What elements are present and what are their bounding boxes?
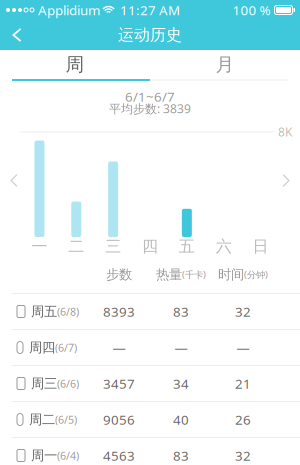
button[interactable]: 周五 <box>0 294 300 329</box>
staticText: 11:27 AM <box>120 1 180 19</box>
staticText: — <box>236 339 249 356</box>
button[interactable]: 周一 <box>0 438 300 465</box>
staticText: (6/7) <box>55 340 77 355</box>
staticText: 26 <box>235 411 251 428</box>
button[interactable]: 周四 <box>0 330 300 365</box>
staticText: 一 <box>31 237 47 256</box>
staticText: 40 <box>173 411 189 428</box>
button[interactable]: 周 <box>0 50 150 79</box>
staticText: 周三 <box>31 375 57 392</box>
staticText: 热量 <box>156 266 182 283</box>
staticText: 运动历史 <box>118 25 182 45</box>
button[interactable]: Previous week <box>0 160 28 200</box>
staticText: 32 <box>235 447 251 464</box>
staticText: 五 <box>179 237 195 256</box>
staticText: 周一 <box>31 447 57 464</box>
staticText: 83 <box>173 447 189 464</box>
staticText: 周 <box>65 53 84 76</box>
staticText: 平均步数: 3839 <box>109 100 191 116</box>
staticText: 100 % <box>232 1 270 19</box>
staticText: 二 <box>68 237 84 256</box>
staticText: (6/8) <box>57 304 79 319</box>
button[interactable]: 周二 <box>0 402 300 437</box>
staticText: 步数 <box>106 266 132 283</box>
button[interactable]: 周三 <box>0 366 300 401</box>
staticText: (千卡) <box>182 268 206 281</box>
staticText: 8K <box>278 124 292 140</box>
staticText: 时间 <box>218 266 244 283</box>
staticText: 34 <box>173 375 189 392</box>
staticText: 周二 <box>29 411 55 428</box>
staticText: (6/6) <box>57 376 79 391</box>
staticText: 8393 <box>103 303 135 320</box>
staticText: 月 <box>215 53 234 76</box>
staticText: 4563 <box>103 447 135 464</box>
staticText: 六 <box>216 237 232 256</box>
staticText: — <box>112 339 125 356</box>
staticText: 周五 <box>31 303 57 320</box>
staticText: 32 <box>235 303 251 320</box>
staticText: 日 <box>253 237 269 256</box>
staticText: (分钟) <box>244 268 268 281</box>
staticText: 6/1~6/7 <box>125 88 175 105</box>
button[interactable]: Next week <box>272 160 300 200</box>
staticText: 四 <box>142 237 158 256</box>
staticText: 三 <box>105 237 121 256</box>
staticText: 周四 <box>29 339 55 356</box>
staticText: — <box>174 339 187 356</box>
staticText: Applidium <box>38 1 100 19</box>
staticText: (6/5) <box>55 412 77 427</box>
staticText: (6/4) <box>57 448 79 463</box>
staticText: 83 <box>173 303 189 320</box>
button[interactable]: Back <box>0 20 34 50</box>
button[interactable]: 月 <box>150 50 300 79</box>
staticText: 9056 <box>103 411 135 428</box>
staticText: 3457 <box>103 375 135 392</box>
staticText: 21 <box>235 375 251 392</box>
